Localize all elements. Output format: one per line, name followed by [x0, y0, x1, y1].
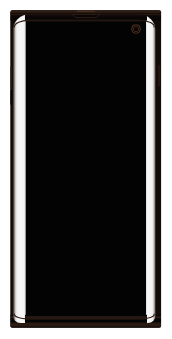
button[interactable]: Smartphone device	[0, 0, 172, 339]
